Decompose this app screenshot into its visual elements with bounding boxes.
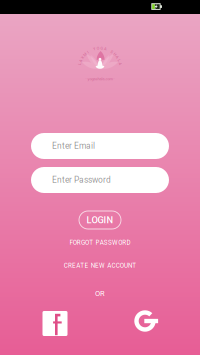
staticText: M [83,52,87,57]
staticText: A [79,58,82,63]
button[interactable]: CREATE NEW ACCOUNT [40,261,160,270]
button[interactable]: Enter Password [31,167,169,193]
staticText: L [118,58,120,63]
staticText: L [79,61,81,66]
staticText: A [119,61,122,66]
button[interactable]: LOGIN [79,211,121,229]
staticText: Y [93,46,96,51]
staticText: A [116,55,119,60]
staticText: I [87,49,88,54]
staticText: H [113,52,116,57]
button[interactable]: FORGOT PASSWORD [40,238,160,247]
staticText: LOGIN [86,214,113,225]
button[interactable]: Sign in with Google [134,310,158,332]
staticText: FORGOT PASSWORD [69,239,130,246]
staticText: X [81,55,84,60]
staticText: · yogashala.com · [85,77,114,81]
staticText: CREATE NEW ACCOUNT [64,262,136,269]
staticText: O [97,45,100,51]
staticText: S [111,49,114,54]
staticText: G [100,45,103,51]
staticText: A [104,46,107,51]
button[interactable]: Enter Email [31,133,169,159]
button[interactable]: Sign in with Facebook [42,311,67,336]
staticText: Enter Password [52,175,111,185]
staticText: Enter Email [52,141,95,151]
staticText: OR [95,289,105,298]
